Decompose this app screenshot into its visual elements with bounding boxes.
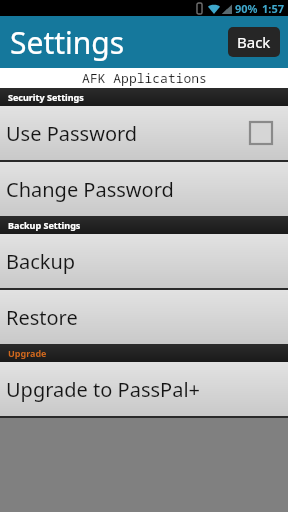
staticText: Upgrade bbox=[8, 347, 47, 359]
staticText: Backup bbox=[6, 248, 282, 275]
staticText: Upgrade to PassPal+ bbox=[6, 376, 282, 403]
button[interactable]: Restore bbox=[0, 290, 288, 344]
staticText: Back bbox=[237, 32, 271, 52]
button[interactable]: Backup bbox=[0, 234, 288, 288]
staticText: Security Settings bbox=[8, 91, 84, 103]
button[interactable]: Change Password bbox=[0, 162, 288, 216]
staticText: 1:57 bbox=[262, 1, 284, 16]
button[interactable]: Back bbox=[228, 27, 280, 57]
staticText: Backup Settings bbox=[8, 219, 81, 231]
button[interactable]: Use Password toggle bbox=[250, 122, 272, 144]
staticText: Use Password bbox=[6, 120, 250, 147]
staticText: Settings bbox=[10, 22, 125, 63]
button[interactable]: Use Password bbox=[0, 106, 288, 160]
staticText: AFK Applications bbox=[82, 69, 207, 87]
button[interactable]: Upgrade to PassPal+ bbox=[0, 362, 288, 416]
staticText: Restore bbox=[6, 304, 282, 331]
staticText: Change Password bbox=[6, 176, 282, 203]
staticText: 90% bbox=[235, 1, 258, 16]
